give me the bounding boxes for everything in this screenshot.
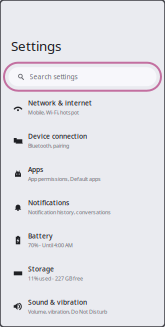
- staticText: Apps: [28, 165, 43, 174]
- button[interactable]: Battery: [0, 223, 165, 257]
- staticText: Volume, vibration, Do Not Disturb: [28, 308, 107, 315]
- staticText: Settings: [11, 37, 61, 55]
- staticText: Device connection: [28, 132, 87, 141]
- staticText: Sound & vibration: [28, 298, 87, 307]
- button[interactable]: Search settings: [4, 63, 161, 91]
- button[interactable]: Device connection: [0, 124, 165, 157]
- staticText: Notifications: [28, 198, 69, 207]
- staticText: Search settings: [29, 72, 77, 81]
- staticText: Network & internet: [28, 99, 92, 107]
- staticText: Notification history, conversations: [28, 208, 111, 216]
- staticText: 11% used - 227 GB free: [28, 275, 83, 282]
- button[interactable]: Notifications: [0, 190, 165, 223]
- staticText: 70% - Until 4:00 AM: [28, 242, 73, 249]
- button[interactable]: Storage: [0, 257, 165, 290]
- button[interactable]: Network & internet: [0, 91, 165, 124]
- staticText: App permissions, Default apps: [28, 175, 101, 182]
- staticText: Bluetooth, pairing: [28, 142, 69, 149]
- button[interactable]: Apps: [0, 157, 165, 190]
- staticText: Mobile, Wi-Fi, hotspot: [28, 109, 79, 116]
- button[interactable]: Sound & vibration: [0, 290, 165, 323]
- staticText: Battery: [28, 231, 53, 240]
- staticText: Storage: [28, 265, 54, 273]
